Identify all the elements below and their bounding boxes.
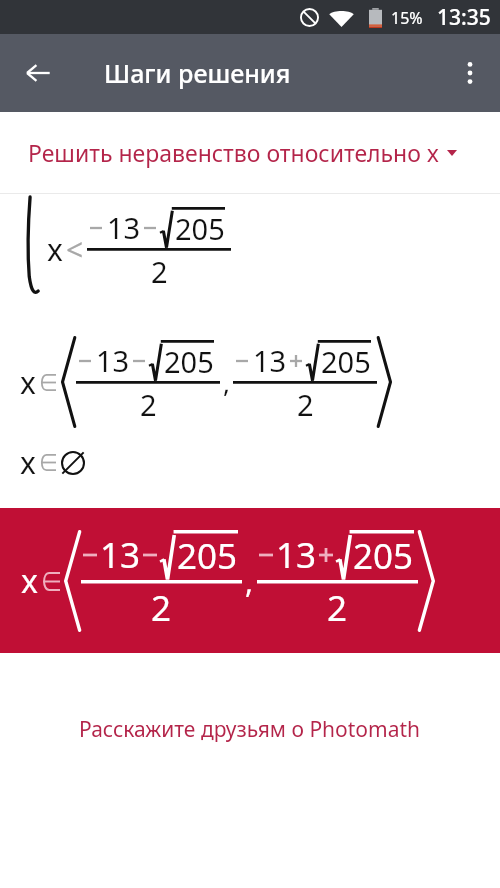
- button[interactable]: Back: [14, 49, 62, 97]
- staticText: 205: [175, 209, 225, 248]
- other: Wi-Fi: [329, 8, 354, 27]
- staticText: 13: [96, 341, 130, 380]
- staticText: 15%: [391, 7, 423, 29]
- staticText: x: [20, 442, 36, 483]
- staticText: <: [66, 229, 84, 270]
- button[interactable]: Решить неравенство относительно x: [0, 112, 500, 193]
- button[interactable]: x: [0, 442, 500, 483]
- other: Battery 15 percent: [369, 8, 382, 28]
- staticText: ,: [245, 561, 254, 602]
- staticText: 205: [353, 532, 414, 580]
- staticText: 13: [276, 531, 317, 579]
- staticText: 2: [140, 385, 157, 424]
- button[interactable]: x: [0, 336, 500, 428]
- staticText: 2: [327, 584, 348, 632]
- other: Do not disturb: [300, 8, 319, 27]
- staticText: Шаги решения: [104, 56, 291, 90]
- staticText: 13: [107, 208, 141, 247]
- staticText: x: [47, 229, 63, 270]
- staticText: 2: [151, 584, 172, 632]
- staticText: 13: [100, 531, 141, 579]
- staticText: 13:35: [437, 3, 491, 32]
- staticText: Решить неравенство относительно x: [28, 137, 440, 168]
- button[interactable]: x: [0, 194, 500, 304]
- button[interactable]: More options: [446, 49, 494, 97]
- staticText: x: [20, 362, 36, 403]
- staticText: 205: [321, 342, 371, 381]
- button[interactable]: x: [0, 508, 500, 653]
- staticText: 13: [253, 341, 287, 380]
- staticText: ,: [223, 365, 230, 400]
- staticText: 2: [151, 252, 168, 291]
- staticText: 205: [177, 532, 238, 580]
- button[interactable]: Расскажите друзьям о Photomath: [67, 709, 433, 750]
- staticText: x: [21, 559, 38, 603]
- staticText: 205: [164, 342, 214, 381]
- staticText: 2: [297, 385, 314, 424]
